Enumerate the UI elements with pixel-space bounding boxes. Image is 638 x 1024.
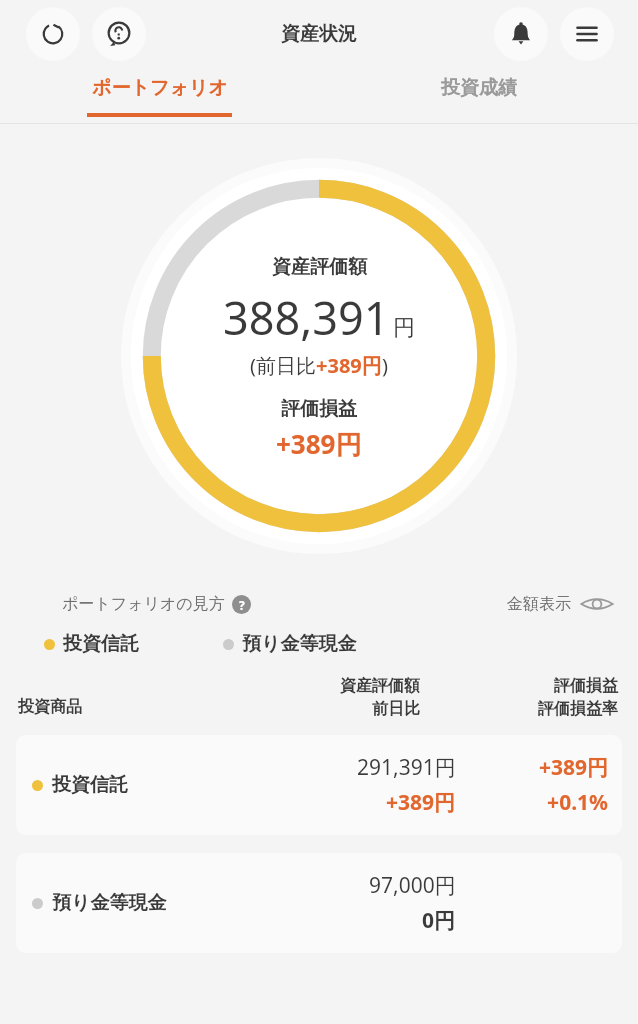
staticText: 金額表示 — [507, 594, 571, 614]
staticText: 資産評価額 — [272, 255, 367, 279]
button[interactable]: ポートフォリオの見方 — [62, 594, 251, 614]
button[interactable]: 投資信託 — [44, 632, 139, 656]
staticText: +389円 — [386, 788, 456, 817]
staticText: (前日比 — [250, 352, 316, 379]
button[interactable]: 預り金等現金 — [16, 853, 622, 953]
button[interactable]: 投資成績 — [319, 68, 638, 124]
staticText: +389円 — [316, 352, 382, 379]
staticText: +389円 — [538, 753, 608, 782]
staticText: 資産状況 — [281, 22, 357, 46]
staticText: 評価損益率 — [538, 699, 618, 719]
button[interactable]: Menu — [560, 7, 614, 61]
staticText: 投資信託 — [52, 773, 128, 797]
staticText: 預り金等現金 — [52, 891, 167, 915]
button[interactable]: 金額表示 — [507, 594, 614, 614]
staticText: 評価損益 — [554, 676, 618, 696]
button[interactable]: 預り金等現金 — [223, 632, 357, 656]
staticText: 前日比 — [372, 699, 420, 719]
staticText: ? — [239, 597, 245, 613]
staticText: ポートフォリオの見方 — [62, 594, 225, 614]
staticText: ) — [382, 352, 388, 379]
staticText: 預り金等現金 — [242, 632, 357, 656]
button[interactable]: Refresh — [26, 7, 80, 61]
staticText: +0.1% — [547, 788, 608, 817]
staticText: ポートフォリオ — [92, 76, 228, 100]
button[interactable]: ポートフォリオ — [0, 68, 319, 124]
staticText: 投資信託 — [63, 632, 139, 656]
staticText: 資産評価額 — [340, 676, 420, 696]
staticText: 投資成績 — [441, 76, 517, 100]
staticText: 評価損益 — [281, 397, 357, 421]
button[interactable]: 投資信託 — [16, 735, 622, 835]
other: Toggle amount visibility — [580, 594, 614, 614]
staticText: 97,000円 — [369, 871, 456, 900]
staticText: 投資商品 — [18, 697, 82, 717]
button[interactable]: Help — [92, 7, 146, 61]
staticText: 0円 — [422, 906, 456, 935]
staticText: 388,391 — [223, 287, 390, 348]
staticText: +389円 — [276, 426, 362, 462]
button[interactable]: Notifications — [494, 7, 548, 61]
staticText: 291,391円 — [357, 753, 456, 782]
staticText: 円 — [393, 314, 415, 342]
